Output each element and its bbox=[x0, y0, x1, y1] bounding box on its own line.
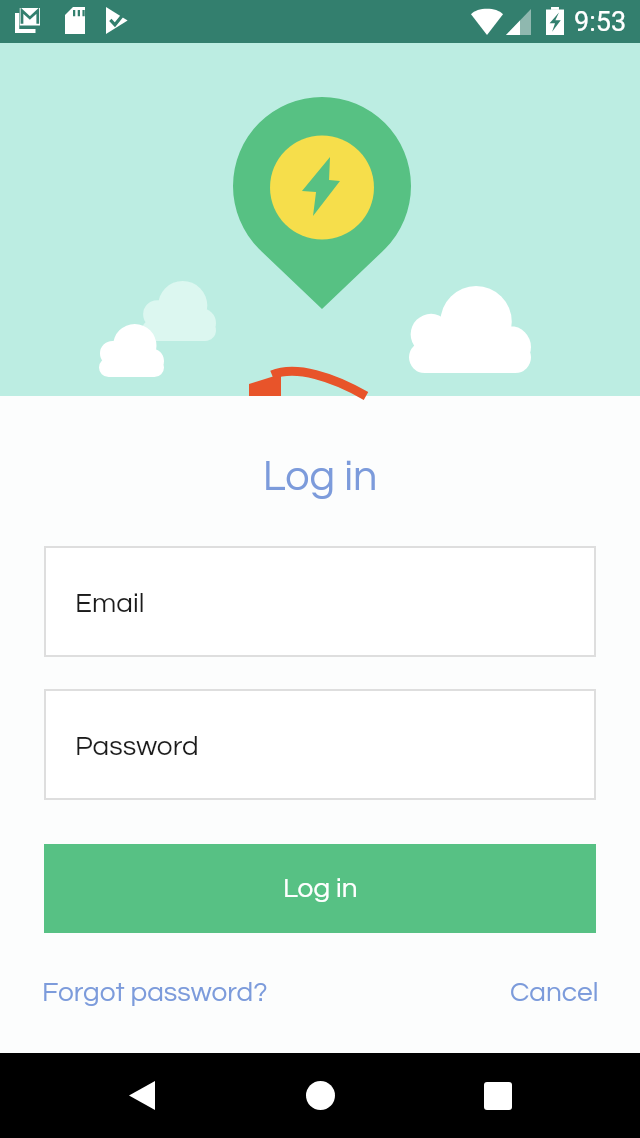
staticText: 9:53 bbox=[574, 6, 627, 38]
staticText: Forgot password? bbox=[42, 978, 268, 1007]
button[interactable]: Cancel bbox=[510, 976, 599, 1009]
staticText: Log in bbox=[0, 455, 640, 499]
staticText: Log in bbox=[283, 874, 358, 903]
button[interactable]: Email bbox=[44, 546, 596, 657]
button[interactable]: Home bbox=[278, 1053, 362, 1138]
staticText: Password bbox=[75, 732, 199, 761]
staticText: Cancel bbox=[510, 978, 599, 1007]
button[interactable]: Recent apps bbox=[456, 1053, 540, 1138]
button[interactable]: Back bbox=[100, 1053, 184, 1138]
button[interactable]: Log in bbox=[44, 844, 596, 933]
button[interactable]: Forgot password? bbox=[42, 976, 268, 1009]
button[interactable]: Password bbox=[44, 689, 596, 800]
staticText: Email bbox=[75, 589, 145, 618]
